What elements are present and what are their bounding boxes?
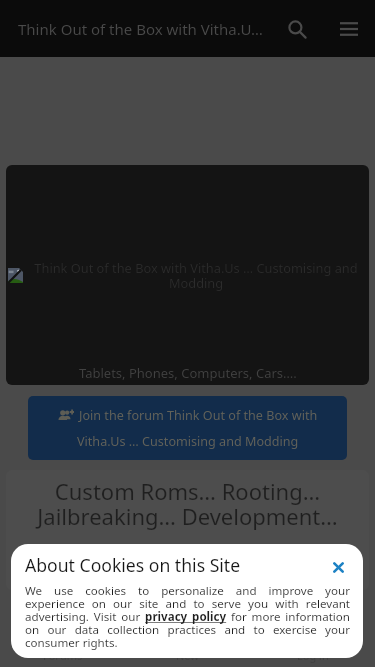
- staticText: About Cookies on this Site: [25, 553, 326, 577]
- button[interactable]: Menu: [323, 3, 375, 55]
- button[interactable]: Close: [326, 553, 350, 577]
- staticText: Think Out of the Box with Vitha.Us … Cus…: [29, 259, 363, 292]
- staticText: We use cookies to personalize and improv…: [25, 583, 350, 650]
- button[interactable]: New: [125, 645, 250, 667]
- staticText: Forums: [43, 648, 83, 663]
- staticText: New: [176, 648, 199, 663]
- staticText: Join the forum Think Out of the Box with: [79, 407, 318, 424]
- button[interactable]: Forums: [0, 645, 125, 667]
- button[interactable]: Search: [271, 3, 323, 55]
- staticText: Think Out of the Box with Vitha.U…: [18, 19, 271, 39]
- staticText: Log in: [297, 648, 329, 663]
- staticText: Custom Roms… Rooting… Jailbreaking… Deve…: [20, 476, 355, 532]
- button[interactable]: Join the forum Think Out of the Box with: [28, 396, 347, 460]
- staticText: Tablets, Phones, Computers, Cars….: [79, 364, 297, 382]
- staticText: Vitha.Us … Customising and Modding: [77, 433, 299, 450]
- button[interactable]: Log in: [250, 645, 375, 667]
